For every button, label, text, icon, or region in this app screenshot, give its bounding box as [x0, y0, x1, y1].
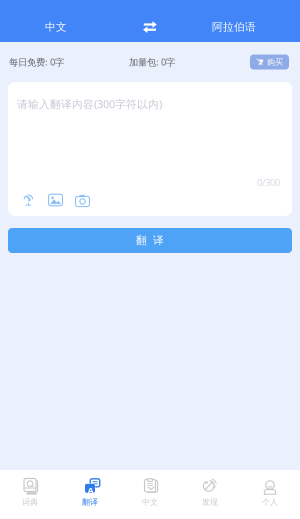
button[interactable]: Camera — [69, 192, 96, 208]
button[interactable]: Voice input — [15, 192, 42, 208]
button[interactable]: 购买 — [250, 54, 289, 69]
button[interactable]: 翻 译 — [8, 228, 292, 253]
staticText: 中文 — [45, 20, 67, 33]
staticText: 翻译 — [82, 497, 98, 507]
staticText: 每日免费: 0字 — [9, 56, 64, 68]
staticText: 购买 — [267, 57, 283, 67]
staticText: 阿拉伯语 — [212, 20, 256, 33]
staticText: 中文 — [142, 497, 158, 507]
staticText: 个人 — [262, 497, 278, 507]
button[interactable]: 阿拉伯语 — [188, 15, 280, 39]
button[interactable]: 中文 — [0, 15, 112, 39]
staticText: 词典 — [22, 497, 38, 507]
staticText: 发现 — [202, 497, 218, 507]
staticText: 加量包: 0字 — [129, 56, 175, 68]
button[interactable]: A — [60, 470, 120, 519]
staticText: A — [87, 484, 93, 496]
staticText: 翻 译 — [136, 234, 164, 247]
button[interactable]: Swap languages — [112, 15, 188, 39]
button[interactable]: 词典 — [0, 470, 60, 519]
staticText: 请输入翻译内容(300字符以内) — [17, 97, 162, 111]
button[interactable]: Photo — [42, 192, 69, 208]
button[interactable]: 发现 — [180, 470, 240, 519]
button[interactable]: 个人 — [240, 470, 300, 519]
button[interactable]: 中文 — [120, 470, 180, 519]
staticText: 0/300 — [257, 176, 280, 189]
